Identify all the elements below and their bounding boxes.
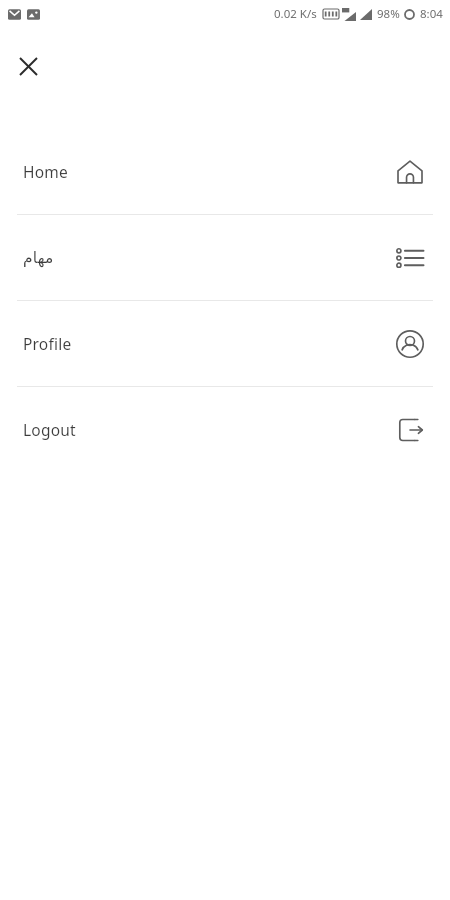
staticText: 98%: [377, 6, 400, 22]
staticText: مهام: [23, 249, 54, 267]
staticText: Home: [23, 161, 68, 182]
button[interactable]: Logout: [0, 387, 450, 472]
other: Logout: [393, 413, 427, 447]
staticText: 0.02 K/s: [274, 6, 317, 22]
button[interactable]: Close: [12, 50, 44, 82]
button[interactable]: Home: [0, 129, 450, 214]
staticText: Logout: [23, 419, 76, 440]
other: Home: [393, 155, 427, 189]
other: Profile: [393, 327, 427, 361]
button[interactable]: Profile: [0, 301, 450, 386]
button[interactable]: مهام: [0, 215, 450, 300]
staticText: Profile: [23, 333, 72, 354]
staticText: 8:04: [420, 6, 443, 22]
other: Tasks: [393, 241, 427, 275]
